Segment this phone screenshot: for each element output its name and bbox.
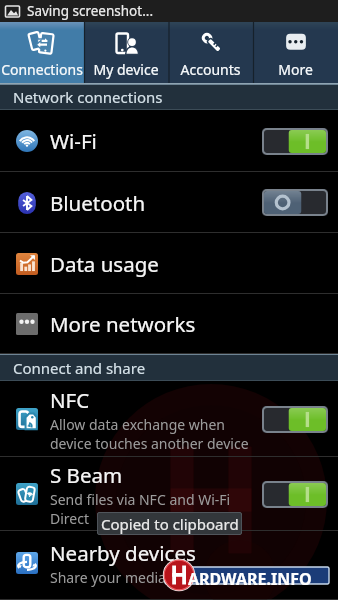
staticText: Wi-Fi xyxy=(50,127,97,155)
staticText: Allow data exchange when device touches … xyxy=(50,415,249,453)
staticText: Copied to clipboard xyxy=(101,514,239,534)
button[interactable]: More xyxy=(253,22,338,84)
button[interactable]: Connections xyxy=(0,22,84,84)
staticText: More networks xyxy=(50,310,196,338)
button[interactable]: My device xyxy=(84,22,168,84)
staticText: Send files via NFC and Wi-Fi Direct xyxy=(50,490,231,528)
staticText: More xyxy=(253,60,338,79)
button[interactable]: Accounts xyxy=(168,22,253,84)
staticText: My device xyxy=(84,60,168,79)
button[interactable]: S Beam xyxy=(0,457,338,531)
staticText: Network connections xyxy=(13,87,163,107)
button[interactable]: Bluetooth xyxy=(0,172,338,233)
staticText: Share your media xyxy=(50,568,166,587)
staticText: S Beam xyxy=(50,461,123,489)
button[interactable]: Wi-Fi xyxy=(0,110,338,172)
button[interactable]: Switch off xyxy=(262,189,328,216)
staticText: Bluetooth xyxy=(50,189,146,217)
button[interactable]: Switch on xyxy=(262,406,328,433)
staticText: Accounts xyxy=(168,60,253,79)
staticText: Nearby devices xyxy=(50,539,196,567)
staticText: Data usage xyxy=(50,250,159,278)
staticText: Connect and share xyxy=(13,358,146,378)
staticText: NFC xyxy=(50,386,90,414)
button[interactable]: Switch on xyxy=(262,128,328,155)
button[interactable]: Nearby devices xyxy=(0,531,338,600)
button[interactable]: NFC xyxy=(0,381,338,457)
button[interactable]: Data usage xyxy=(0,233,338,294)
staticText: ARDWARE.INFO xyxy=(188,568,312,590)
button[interactable]: More networks xyxy=(0,294,338,354)
button[interactable]: Switch on xyxy=(262,481,328,508)
staticText: Saving screenshot... xyxy=(27,2,154,20)
staticText: Connections xyxy=(0,60,84,79)
